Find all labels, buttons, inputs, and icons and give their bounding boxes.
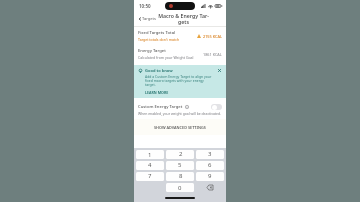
staticText: Energy Target xyxy=(138,48,166,54)
staticText: Good to know xyxy=(145,68,173,73)
staticText: Custom Energy Target xyxy=(138,104,183,110)
button[interactable]: 6 xyxy=(196,161,224,170)
button[interactable]: Backspace xyxy=(196,183,224,192)
staticText: 8 xyxy=(179,172,183,180)
button[interactable]: Energy Target xyxy=(134,45,226,63)
button[interactable]: 0 xyxy=(166,183,194,192)
staticText: Targets xyxy=(142,16,156,21)
staticText: 7 xyxy=(148,172,152,180)
staticText: Target totals don't match xyxy=(138,37,180,42)
staticText: Fixed Targets Total xyxy=(138,30,176,36)
staticText: 6 xyxy=(208,161,212,169)
button[interactable]: Fixed Targets Total xyxy=(134,27,226,45)
staticText: When enabled, your weight goal will be d… xyxy=(138,111,221,116)
button[interactable]: LEARN MORE xyxy=(145,90,169,95)
staticText: Calculated from your Weight Goal xyxy=(138,55,194,60)
staticText: 1 xyxy=(148,151,152,159)
staticText: 0 xyxy=(178,184,182,192)
staticText: LEARN MORE xyxy=(145,90,169,95)
staticText: Macro & Energy Tar- gets xyxy=(158,12,209,25)
button[interactable]: 2 xyxy=(166,150,194,159)
staticText: 2 xyxy=(179,150,183,158)
staticText: 1861 KCAL xyxy=(203,52,222,57)
button[interactable]: 8 xyxy=(166,172,194,181)
staticText: 9 xyxy=(208,172,212,180)
button[interactable]: Targets xyxy=(137,15,157,22)
staticText: 3 xyxy=(208,150,212,158)
button[interactable]: SHOW ADVANCED SETTINGS xyxy=(134,119,226,135)
staticText: 2155 KCAL xyxy=(203,34,222,39)
button[interactable]: 7 xyxy=(136,172,164,181)
button[interactable]: 9 xyxy=(196,172,224,181)
button[interactable]: 4 xyxy=(136,161,164,170)
staticText: 10:50 xyxy=(139,3,151,9)
button[interactable]: Dismiss xyxy=(217,68,222,73)
staticText: SHOW ADVANCED SETTINGS xyxy=(154,125,206,130)
button[interactable]: 5 xyxy=(166,161,194,170)
button[interactable]: 3 xyxy=(196,150,224,159)
button[interactable]: Custom Energy Target xyxy=(138,104,222,110)
staticText: Add a Custom Energy Target to align your… xyxy=(145,74,215,87)
button[interactable]: Custom Energy Target toggle xyxy=(211,104,222,110)
staticText: 5 xyxy=(178,161,182,169)
button[interactable]: 1 xyxy=(136,150,164,159)
staticText: 4 xyxy=(148,161,152,169)
